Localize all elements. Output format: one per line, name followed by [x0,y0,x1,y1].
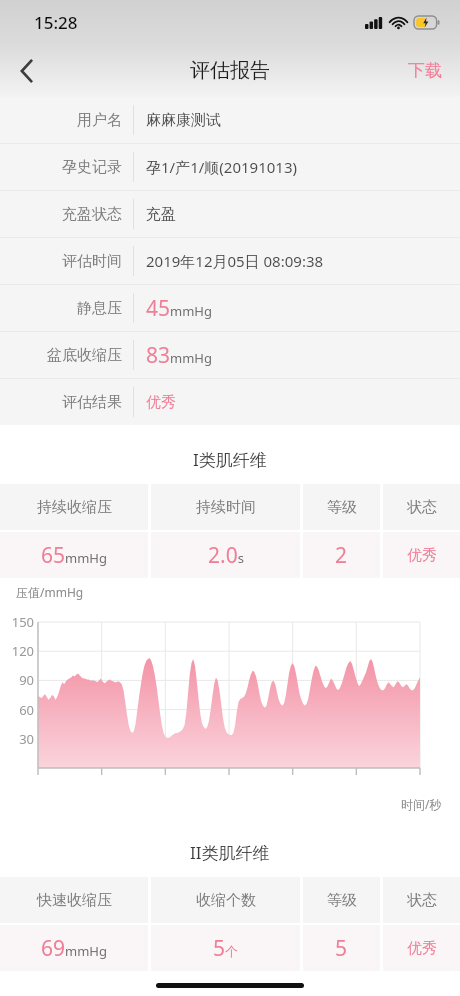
button[interactable]: 评估结果 [0,379,460,425]
staticText: 收缩个数 [196,891,256,910]
staticText: I类肌纤维 [193,448,267,471]
staticText: 83mmHg [146,341,212,370]
staticText: 150 [0,613,34,631]
staticText: 状态 [407,891,437,910]
button[interactable]: 状态 [383,877,460,923]
staticText: 69mmHg [41,934,107,963]
staticText: 15:28 [34,11,78,34]
staticText: 持续时间 [196,498,256,517]
staticText: 优秀 [407,939,437,958]
staticText: 孕史记录 [62,158,122,177]
button[interactable]: 等级 [303,484,380,530]
staticText: 充盈状态 [62,205,122,224]
staticText: II类肌纤维 [190,841,270,864]
staticText: 30 [0,730,34,748]
staticText: 孕1/产1/顺(20191013) [146,157,297,177]
staticText: 状态 [407,498,437,517]
staticText: 下载 [408,60,442,81]
staticText: 90 [0,671,34,689]
staticText: 时间/秒 [401,796,442,812]
staticText: 静息压 [77,299,122,318]
staticText: 2019年12月05日 08:09:38 [146,251,324,271]
staticText: 评估结果 [62,393,122,412]
button[interactable]: 持续时间 [151,484,300,530]
button[interactable]: 优秀 [383,925,460,971]
button[interactable]: 评估时间 [0,238,460,284]
staticText: 65mmHg [41,541,107,570]
staticText: 等级 [327,498,357,517]
staticText: 优秀 [407,546,437,565]
staticText: 充盈 [146,205,176,224]
button[interactable]: 2.0s [151,532,300,578]
staticText: 60 [0,701,34,719]
button[interactable]: 状态 [383,484,460,530]
staticText: 120 [0,642,34,660]
button[interactable]: 盆底收缩压 [0,332,460,378]
button[interactable]: 65mmHg [0,532,148,578]
staticText: 麻麻康测试 [146,111,221,130]
staticText: 评估时间 [62,252,122,271]
staticText: 5 [335,934,348,963]
staticText: 评估报告 [190,58,270,83]
button[interactable]: 快速收缩压 [0,877,148,923]
button[interactable]: 优秀 [383,532,460,578]
staticText: 45mmHg [146,294,212,323]
staticText: 盆底收缩压 [47,346,122,365]
staticText: 2.0s [208,541,244,570]
staticText: 持续收缩压 [37,498,112,517]
button[interactable]: 充盈状态 [0,191,460,237]
button[interactable]: 用户名 [0,97,460,143]
staticText: 快速收缩压 [37,891,112,910]
button[interactable]: 等级 [303,877,380,923]
button[interactable]: 69mmHg [0,925,148,971]
button[interactable]: 2 [303,532,380,578]
staticText: 5个 [213,934,239,963]
button[interactable]: 持续收缩压 [0,484,148,530]
staticText: 优秀 [146,393,176,412]
staticText: 压值/mmHg [16,584,84,600]
button[interactable]: 5个 [151,925,300,971]
button[interactable]: 孕史记录 [0,144,460,190]
staticText: 用户名 [77,111,122,130]
staticText: 等级 [327,891,357,910]
button[interactable]: Back [0,45,52,97]
staticText: 2 [335,541,348,570]
button[interactable]: 5 [303,925,380,971]
button[interactable]: 收缩个数 [151,877,300,923]
button[interactable]: 静息压 [0,285,460,331]
button[interactable]: 下载 [390,46,460,95]
